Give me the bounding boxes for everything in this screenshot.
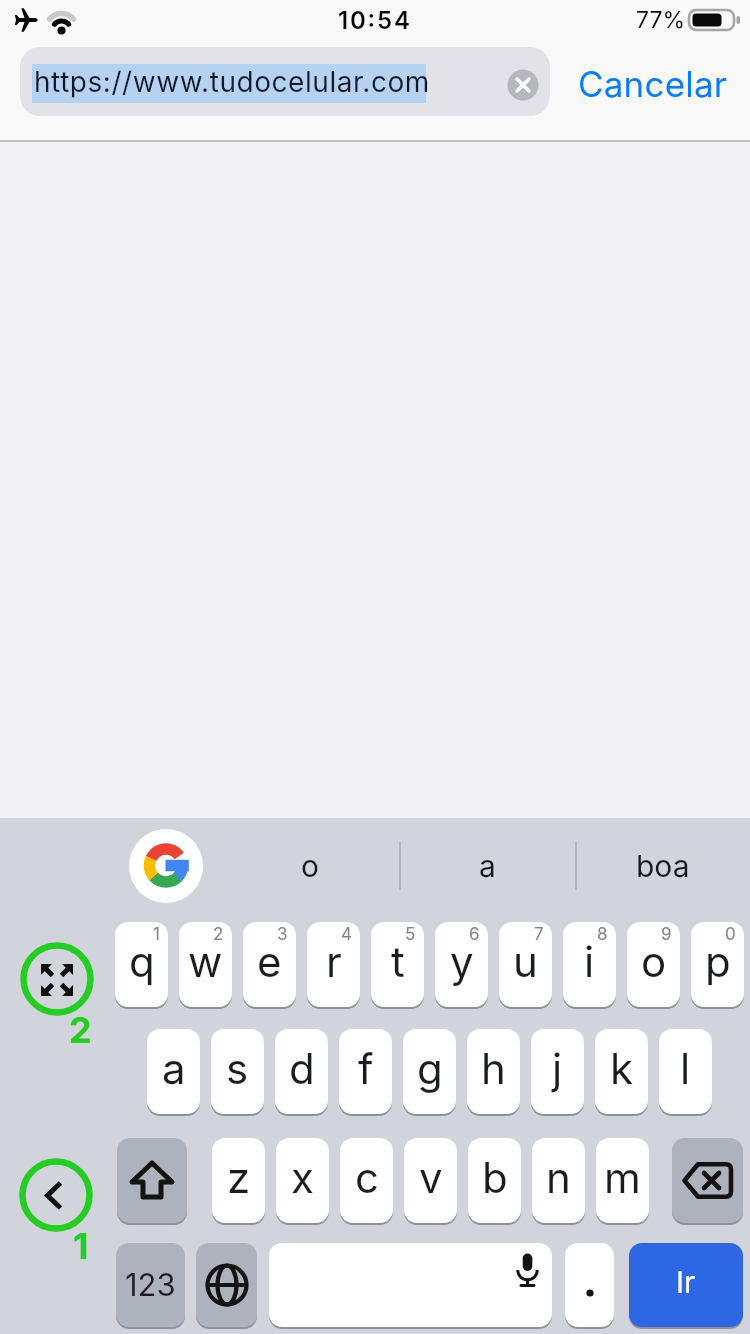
staticText: 9	[661, 924, 672, 945]
button[interactable]: l	[659, 1029, 712, 1114]
button[interactable]: t	[371, 922, 424, 1007]
staticText: w	[188, 936, 223, 987]
staticText: 8	[597, 924, 608, 945]
staticText: 0	[725, 924, 736, 945]
staticText: f	[358, 1043, 374, 1094]
staticText: o	[641, 936, 667, 987]
staticText: a	[162, 1043, 186, 1094]
button[interactable]: x	[276, 1138, 329, 1223]
button[interactable]	[269, 1243, 552, 1327]
button[interactable]: 123	[116, 1243, 185, 1327]
button[interactable]	[565, 1243, 614, 1327]
staticText: boa	[636, 848, 690, 884]
staticText: z	[227, 1152, 251, 1203]
button[interactable]: n	[532, 1138, 585, 1223]
button[interactable]: h	[467, 1029, 520, 1114]
staticText: 1	[153, 924, 160, 945]
staticText: Cancelar	[578, 63, 728, 105]
staticText: x	[291, 1152, 314, 1203]
staticText: h	[481, 1043, 506, 1094]
button[interactable]	[196, 1243, 257, 1327]
staticText: g	[417, 1043, 443, 1094]
staticText: 6	[469, 924, 480, 945]
button[interactable]: w	[179, 922, 232, 1007]
staticText: i	[584, 936, 595, 987]
button[interactable]: i	[563, 922, 616, 1007]
staticText: https://www.tudocelular.com	[34, 65, 430, 99]
button[interactable]: k	[595, 1029, 648, 1114]
button[interactable]	[129, 829, 203, 903]
button[interactable]: m	[596, 1138, 649, 1223]
button[interactable]: z	[212, 1138, 265, 1223]
button[interactable]: g	[403, 1029, 456, 1114]
button[interactable]: a	[147, 1029, 200, 1114]
staticText: 123	[125, 1266, 176, 1304]
staticText: b	[482, 1152, 508, 1203]
staticText: Ir	[676, 1264, 696, 1300]
staticText: m	[604, 1152, 641, 1203]
staticText: t	[391, 936, 405, 987]
staticText: 10:54	[338, 6, 412, 32]
staticText: p	[705, 936, 731, 987]
staticText: 3	[277, 924, 288, 945]
staticText: q	[129, 936, 155, 987]
button[interactable]: f	[339, 1029, 392, 1114]
staticText: s	[226, 1043, 249, 1094]
staticText: e	[257, 936, 282, 987]
button[interactable]: o	[627, 922, 680, 1007]
button[interactable]	[672, 1138, 743, 1223]
staticText: r	[326, 936, 342, 987]
staticText: 1	[73, 1224, 89, 1268]
staticText: o	[301, 848, 319, 884]
button[interactable]: u	[499, 922, 552, 1007]
button[interactable]: https://www.tudocelular.com	[20, 47, 550, 116]
staticText: y	[450, 936, 474, 987]
button[interactable]: c	[340, 1138, 393, 1223]
button[interactable]: j	[531, 1029, 584, 1114]
button[interactable]: v	[404, 1138, 457, 1223]
button[interactable]: q	[115, 922, 168, 1007]
button[interactable]: e	[243, 922, 296, 1007]
button[interactable]	[507, 69, 539, 101]
button[interactable]: Cancelar	[555, 51, 750, 117]
button[interactable]: b	[468, 1138, 521, 1223]
button[interactable]: o	[236, 840, 384, 892]
staticText: n	[546, 1152, 571, 1203]
staticText: 2	[69, 1008, 92, 1052]
button[interactable]: s	[211, 1029, 264, 1114]
button[interactable]: r	[307, 922, 360, 1007]
staticText: 77%	[636, 6, 686, 32]
button[interactable]: d	[275, 1029, 328, 1114]
button[interactable]: boa	[589, 840, 737, 892]
staticText: d	[289, 1043, 315, 1094]
staticText: 4	[341, 924, 352, 945]
staticText: v	[419, 1152, 443, 1203]
button[interactable]	[19, 1158, 93, 1232]
button[interactable]	[20, 942, 94, 1016]
button[interactable]	[117, 1138, 187, 1223]
staticText: 7	[534, 924, 544, 945]
button[interactable]: a	[413, 840, 561, 892]
button[interactable]: p	[691, 922, 744, 1007]
staticText: l	[680, 1043, 691, 1094]
button[interactable]: Ir	[629, 1243, 743, 1327]
button[interactable]: y	[435, 922, 488, 1007]
staticText: j	[552, 1043, 563, 1094]
staticText: a	[479, 848, 496, 884]
staticText: 2	[213, 924, 224, 945]
staticText: c	[355, 1152, 379, 1203]
staticText: u	[513, 936, 538, 987]
staticText: 5	[405, 924, 416, 945]
staticText: k	[610, 1043, 634, 1094]
